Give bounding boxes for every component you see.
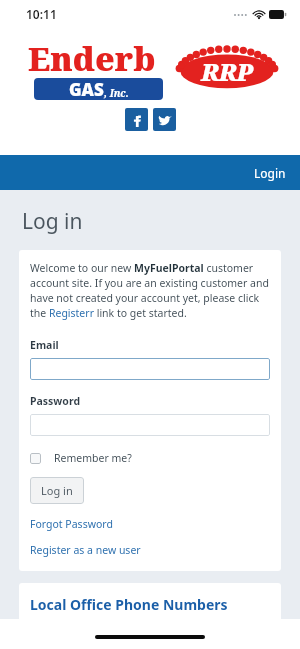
button[interactable]: Facebook xyxy=(125,108,148,131)
staticText: , Inc. xyxy=(104,86,129,100)
button[interactable]: Log in xyxy=(30,477,84,504)
staticText: RRP xyxy=(201,55,254,88)
staticText: Log in xyxy=(41,483,73,498)
staticText: Enderby Gas, Inc. xyxy=(30,630,116,644)
staticText: Login xyxy=(254,165,286,181)
staticText: Remember me? xyxy=(54,451,132,465)
staticText: Register as a new user xyxy=(30,543,141,557)
button[interactable]: Login xyxy=(240,157,300,189)
staticText: GAS xyxy=(69,78,104,100)
staticText: Enderby xyxy=(28,36,168,76)
staticText: Local Office Phone Numbers xyxy=(30,595,228,614)
staticText: Forgot Password xyxy=(30,517,113,531)
button[interactable]: Email input xyxy=(30,358,270,380)
staticText: Password xyxy=(30,394,81,408)
button[interactable]: Remember me? xyxy=(30,451,132,465)
button[interactable]: Register as a new user xyxy=(30,543,141,557)
button[interactable]: Forgot Password xyxy=(30,517,113,531)
staticText: 10:11 xyxy=(26,6,57,22)
button[interactable]: Twitter xyxy=(153,108,176,131)
staticText: Log in xyxy=(22,207,83,236)
button[interactable]: Password input xyxy=(30,414,270,436)
staticText: Email xyxy=(30,338,59,352)
staticText: Welcome to our new MyFuelPortal customer… xyxy=(30,261,270,320)
